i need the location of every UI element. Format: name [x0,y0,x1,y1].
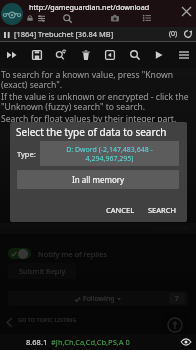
staticText: http://gameguardian.net/download [29,2,150,12]
staticText: D: Dword (-2,147,483,648 - 4,294,967,295… [66,145,153,163]
button[interactable]: D: Dword (-2,147,483,648 - 4,294,967,295… [40,141,179,166]
staticText: CANCEL [106,205,135,215]
button[interactable]: Screenshot [110,13,119,22]
button[interactable]: GO TO TOPIC LISTING [4,311,196,333]
button[interactable]: Following [8,291,188,306]
button[interactable]: Pause [2,30,11,39]
staticText: gameguardian.net [10,43,63,51]
staticText: 8.68.1 [26,337,48,347]
button[interactable]: Save [25,41,49,68]
button[interactable]: SEARCH [145,203,180,217]
button[interactable]: Delete [74,41,98,68]
staticText: 7 [175,294,179,303]
staticText: Notify me of replies [38,249,107,259]
button[interactable]: Menu [172,41,196,68]
staticText: To search for a known value, press "Know… [1,69,195,91]
button[interactable]: Reading list [142,13,151,22]
button[interactable]: Submit Reply [8,263,76,279]
button[interactable]: Find in page [62,13,72,23]
button[interactable]: Back [98,41,122,68]
staticText: #Jh,Ch,Ca,Cd,Cb,PS,A 0 [51,337,130,347]
staticText: Following [83,294,115,304]
button[interactable]: Site logo [1,3,23,25]
button[interactable]: Notify me of replies [8,248,196,259]
staticText: [1864] Trebuchet [36.84 MB] [14,29,114,39]
staticText: Type: [17,149,36,159]
button[interactable]: CANCEL [103,203,138,217]
button[interactable]: Search value [49,41,73,68]
button[interactable]: In all memory [17,170,179,189]
button[interactable]: Fast forward [0,41,24,68]
button[interactable]: Toggle visibility [180,336,192,348]
staticText: Submit Reply [19,266,66,276]
staticText: Search for float values by their integer… [1,113,177,125]
button[interactable]: Refresh [183,29,193,39]
staticText: SEARCH [148,205,177,215]
button[interactable]: Scroll to top [162,312,188,338]
staticText: (0) [169,29,178,39]
staticText: GO TO TOPIC LISTING [18,316,77,323]
staticText: In all memory [72,174,125,185]
staticText: my first time [10,30,52,40]
button[interactable]: Find [123,41,147,68]
button[interactable]: Play [147,41,171,68]
staticText: Select the type of data to search [16,125,167,139]
button[interactable]: Close tab [180,5,193,18]
staticText: If the value is unknown or encrypted - c… [1,91,195,113]
